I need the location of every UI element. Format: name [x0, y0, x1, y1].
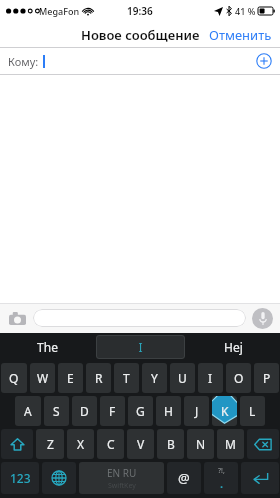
staticText: W: [37, 370, 49, 386]
button[interactable]: J: [184, 396, 209, 426]
button[interactable]: O: [226, 363, 251, 393]
staticText: V: [137, 436, 145, 452]
button[interactable]: Camera: [7, 308, 27, 328]
staticText: D: [80, 403, 89, 419]
staticText: 123: [10, 470, 31, 486]
staticText: T: [123, 370, 130, 386]
button[interactable]: M: [217, 429, 244, 459]
staticText: The: [37, 339, 58, 355]
button[interactable]: U: [170, 363, 195, 393]
button[interactable]: Hej: [189, 335, 278, 359]
staticText: H: [164, 403, 173, 419]
button[interactable]: I: [96, 335, 185, 359]
button[interactable]: 123: [1, 462, 39, 494]
button[interactable]: Voice message: [252, 308, 273, 329]
button[interactable]: K: [212, 396, 237, 426]
button[interactable]: G: [128, 396, 153, 426]
staticText: Новое сообщение: [81, 26, 200, 44]
staticText: SwiftKey: [108, 481, 136, 491]
staticText: ?!,: [218, 466, 225, 476]
staticText: Кому:: [8, 54, 39, 69]
staticText: U: [178, 370, 187, 386]
button[interactable]: Q: [1, 363, 27, 393]
button[interactable]: L: [240, 396, 265, 426]
staticText: O: [234, 370, 244, 386]
button[interactable]: Add contact: [256, 53, 272, 69]
staticText: M: [225, 436, 236, 452]
button[interactable]: B: [157, 429, 184, 459]
staticText: I: [138, 339, 143, 355]
staticText: @: [178, 469, 190, 487]
button[interactable]: Change language: [42, 462, 76, 494]
button[interactable]: N: [187, 429, 214, 459]
staticText: Hej: [224, 339, 243, 355]
staticText: B: [167, 436, 175, 452]
staticText: A: [24, 403, 32, 419]
button[interactable]: R: [86, 363, 111, 393]
button[interactable]: X: [67, 429, 94, 459]
staticText: F: [109, 403, 116, 419]
button[interactable]: F: [100, 396, 125, 426]
staticText: MegaFon: [39, 5, 80, 17]
button[interactable]: I: [198, 363, 223, 393]
staticText: Q: [9, 370, 19, 386]
staticText: P: [263, 370, 271, 386]
button[interactable]: P: [254, 363, 279, 393]
staticText: 19:36: [127, 4, 153, 18]
button[interactable]: W: [30, 363, 55, 393]
button[interactable]: The: [2, 335, 92, 359]
staticText: L: [249, 403, 256, 419]
button[interactable]: S: [44, 396, 69, 426]
button[interactable]: ?!,: [204, 462, 238, 494]
staticText: EN RU: [107, 466, 137, 480]
staticText: Z: [47, 436, 54, 452]
button[interactable]: EN RU: [79, 462, 164, 494]
staticText: X: [77, 436, 85, 452]
button[interactable]: H: [156, 396, 181, 426]
button[interactable]: @: [167, 462, 201, 494]
button[interactable]: A: [15, 396, 41, 426]
button[interactable]: D: [72, 396, 97, 426]
staticText: C: [107, 436, 115, 452]
button[interactable]: Shift: [1, 429, 33, 459]
staticText: 41 %: [235, 5, 256, 17]
staticText: G: [136, 403, 145, 419]
staticText: Y: [151, 370, 158, 386]
staticText: J: [195, 403, 199, 419]
button[interactable]: [33, 309, 246, 327]
button[interactable]: Enter: [241, 462, 279, 494]
button[interactable]: Отменить: [201, 22, 280, 47]
button[interactable]: V: [127, 429, 154, 459]
button[interactable]: C: [97, 429, 124, 459]
button[interactable]: Backspace: [247, 429, 279, 459]
staticText: E: [67, 370, 74, 386]
staticText: S: [53, 403, 60, 419]
button[interactable]: Y: [142, 363, 167, 393]
staticText: K: [221, 403, 229, 419]
staticText: .: [220, 476, 224, 491]
button[interactable]: T: [114, 363, 139, 393]
staticText: N: [196, 436, 206, 452]
staticText: Отменить: [209, 26, 272, 43]
staticText: I: [208, 370, 213, 386]
staticText: R: [95, 370, 103, 386]
button[interactable]: Z: [36, 429, 64, 459]
button[interactable]: E: [58, 363, 83, 393]
